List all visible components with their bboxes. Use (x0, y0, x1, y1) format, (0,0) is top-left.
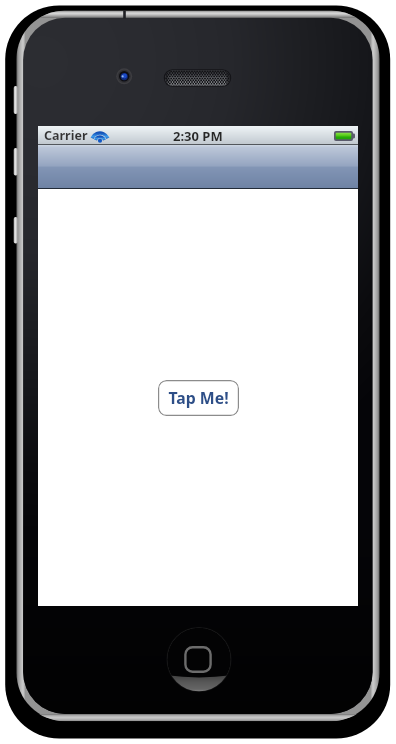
staticText: 2:30 PM (173, 127, 223, 145)
staticText: Tap Me! (168, 387, 229, 409)
staticText: Carrier (44, 127, 88, 144)
button[interactable]: Tap Me! (158, 380, 239, 416)
